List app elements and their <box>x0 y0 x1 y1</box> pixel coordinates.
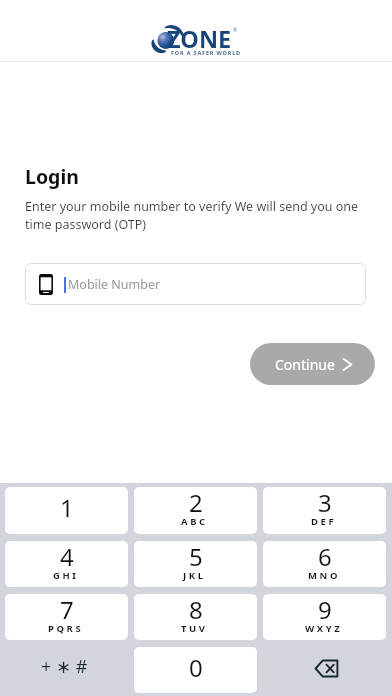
staticText: 5 <box>189 541 203 573</box>
staticText: 0 <box>189 651 203 684</box>
staticText: JKL <box>183 569 206 582</box>
button[interactable]: 0 <box>134 647 257 693</box>
staticText: GHI <box>53 569 79 582</box>
staticText: WXYZ <box>305 622 343 635</box>
button[interactable]: Backspace <box>263 647 386 693</box>
button[interactable]: 4 <box>5 541 128 587</box>
button[interactable]: 9 <box>263 594 386 640</box>
staticText: 1 <box>60 491 74 524</box>
staticText: DEF <box>311 515 337 528</box>
staticText: 4 <box>60 541 74 573</box>
staticText: 7 <box>60 594 74 626</box>
button[interactable]: 1 <box>5 487 128 534</box>
button[interactable]: Mobile Number <box>25 263 366 305</box>
staticText: 3 <box>318 487 332 519</box>
button[interactable]: 8 <box>134 594 257 640</box>
button[interactable]: Continue <box>250 343 375 385</box>
staticText: Mobile Number <box>68 276 161 293</box>
staticText: 6 <box>318 541 332 573</box>
button[interactable]: 2 <box>134 487 257 534</box>
staticText: 8 <box>189 594 203 626</box>
button[interactable]: 5 <box>134 541 257 587</box>
staticText: Login <box>25 163 79 190</box>
staticText: + ∗ # <box>41 654 88 679</box>
staticText: ® <box>233 27 238 34</box>
staticText: Continue <box>275 355 335 374</box>
staticText: ABC <box>181 515 208 528</box>
button[interactable]: Symbols <box>5 647 128 693</box>
button[interactable]: 3 <box>263 487 386 534</box>
staticText: FOR A SAFER WORLD <box>171 49 241 56</box>
staticText: 9 <box>318 594 332 626</box>
staticText: PQRS <box>48 622 84 635</box>
button[interactable]: 6 <box>263 541 386 587</box>
staticText: Enter your mobile number to verify We wi… <box>25 198 366 233</box>
staticText: 2 <box>189 487 203 519</box>
staticText: ZONE <box>167 23 232 55</box>
staticText: MNO <box>308 569 340 582</box>
button[interactable]: 7 <box>5 594 128 640</box>
staticText: TUV <box>181 622 208 635</box>
